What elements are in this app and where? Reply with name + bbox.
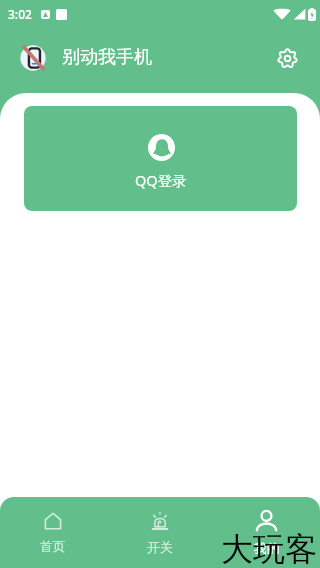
staticText: 3:02 (8, 6, 32, 22)
staticText: 别动我手机 (62, 46, 152, 69)
staticText: QQ登录 (135, 170, 187, 190)
button[interactable]: 首页 (0, 497, 106, 568)
staticText: 我的 (254, 541, 280, 557)
staticText: 开关 (147, 540, 173, 556)
staticText: 首页 (40, 539, 66, 555)
button[interactable]: 开关 (106, 497, 213, 568)
button[interactable]: QQ登录 (24, 106, 297, 211)
staticText: 大玩客 (221, 529, 317, 568)
button[interactable]: Settings (272, 43, 302, 73)
button[interactable]: 我的 (213, 497, 320, 568)
